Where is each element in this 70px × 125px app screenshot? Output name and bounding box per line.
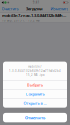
staticText: 1.3.0-844132b84fh12ac71fa3d2b4 — [9, 69, 61, 73]
staticText: 15,2 МБ .ipa — [26, 73, 44, 77]
staticText: mobil3n7 — [28, 65, 42, 68]
staticText: Очистить — [2, 6, 19, 11]
button[interactable]: Изменить — [50, 6, 68, 11]
staticText: Выбрать — [27, 82, 43, 87]
staticText: Отменить — [25, 115, 45, 120]
button[interactable]: Отменить — [3, 113, 67, 122]
staticText: mobil3n7-rnac-1.3.0-844132b84fh… — [2, 13, 66, 18]
staticText: Сохранить — [25, 91, 44, 97]
button[interactable]: Сохранить — [3, 90, 67, 98]
button[interactable]: Очистить — [2, 6, 19, 11]
staticText: Открыть в ... — [23, 101, 46, 106]
button[interactable]: Выбрать — [3, 80, 67, 89]
staticText: Изменить — [50, 6, 68, 11]
staticText: 10 апр. 2019 г. · 15,2 МБ — [2, 19, 40, 22]
button[interactable]: Открыть в ... — [3, 99, 67, 108]
staticText: 9:41 — [33, 1, 40, 4]
button[interactable]: mobil3n7-rnac-1.3.0-844132b84fh… — [0, 13, 70, 22]
staticText: Загрузки — [26, 6, 43, 11]
